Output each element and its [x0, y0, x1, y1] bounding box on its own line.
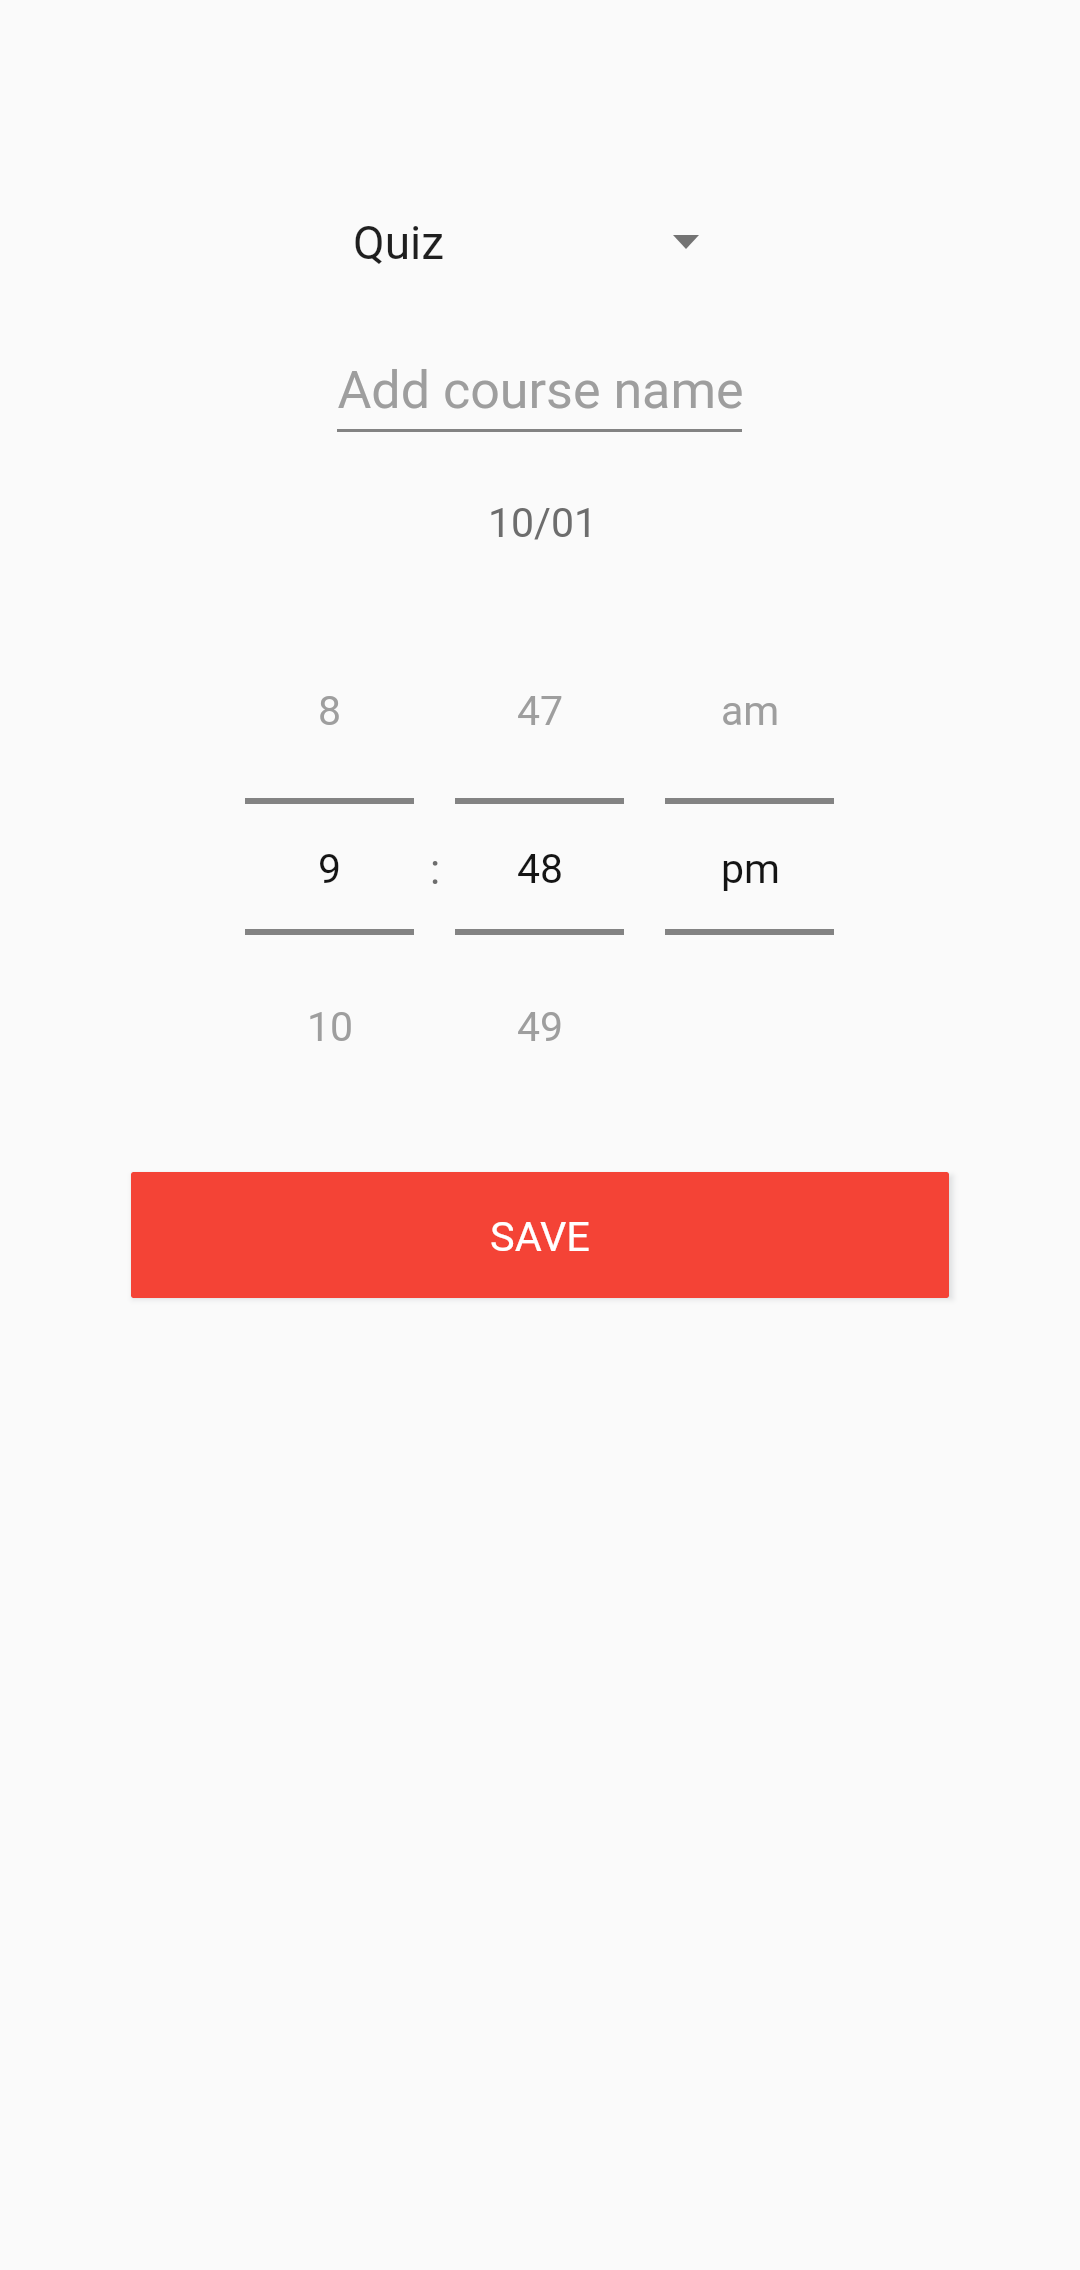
button[interactable]: 10/01 [440, 489, 640, 549]
button[interactable]: Quiz [340, 196, 720, 288]
staticText: 48 [517, 845, 564, 893]
other: Open reminder type menu [673, 235, 699, 249]
staticText: am [721, 687, 780, 735]
staticText: pm [721, 845, 780, 893]
button[interactable]: Hour, selected value [225, 839, 435, 899]
staticText: SAVE [490, 1212, 590, 1261]
staticText: Add course name [337, 360, 744, 421]
staticText: Quiz [353, 216, 445, 270]
button[interactable]: Minute, next value [435, 997, 645, 1057]
staticText: : [430, 845, 441, 894]
staticText: 49 [517, 1003, 564, 1051]
button[interactable]: Minute, selected value [435, 839, 645, 899]
staticText: 10 [307, 1003, 354, 1051]
staticText: 9 [318, 845, 342, 893]
button[interactable]: AM or PM, selected value [645, 839, 855, 899]
button[interactable]: SAVE [131, 1172, 949, 1298]
button[interactable]: AM or PM, previous value [645, 681, 855, 741]
button[interactable]: Add course name [300, 350, 780, 432]
staticText: 8 [318, 687, 342, 735]
button[interactable]: Hour, previous value [225, 681, 435, 741]
button[interactable]: Hour, next value [225, 997, 435, 1057]
staticText: 10/01 [488, 499, 598, 547]
staticText: 47 [517, 687, 564, 735]
button[interactable]: Minute, previous value [435, 681, 645, 741]
